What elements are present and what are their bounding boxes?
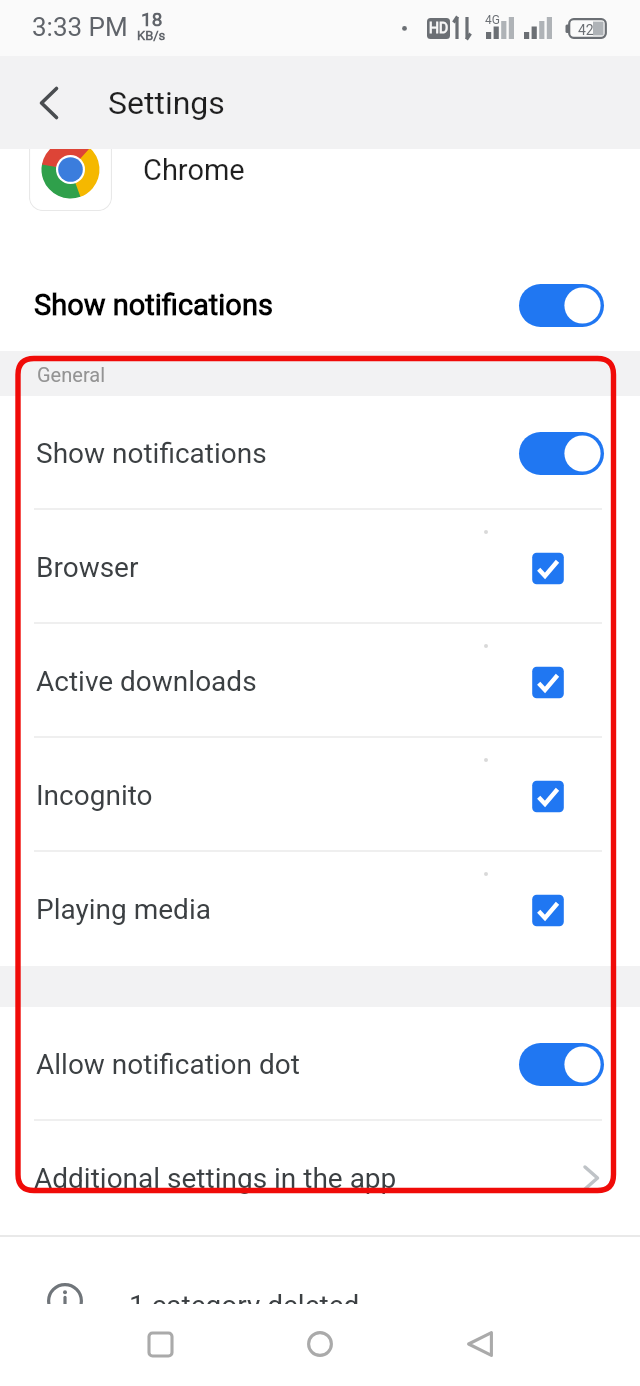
button[interactable]: Show notifications bbox=[0, 396, 640, 510]
staticText: 42 bbox=[578, 22, 594, 38]
staticText: 1 category deleted bbox=[129, 1289, 360, 1322]
staticText: 3:33 PM bbox=[32, 12, 128, 42]
button[interactable]: Additional settings in the app bbox=[0, 1121, 640, 1235]
staticText: Show notifications bbox=[36, 437, 267, 470]
staticText: Settings bbox=[108, 84, 225, 122]
button[interactable]: Info bbox=[0, 1237, 640, 1377]
button[interactable]: Active downloads bbox=[0, 624, 640, 738]
staticText: Browser bbox=[36, 551, 139, 584]
button[interactable]: Incognito bbox=[0, 738, 640, 852]
button[interactable]: Checkbox bbox=[527, 546, 569, 588]
staticText: 18 bbox=[141, 8, 163, 30]
button[interactable]: Toggle setting bbox=[519, 432, 604, 475]
staticText: General bbox=[37, 363, 106, 386]
button[interactable]: Recent apps bbox=[125, 1309, 195, 1379]
button[interactable]: Checkbox bbox=[527, 774, 569, 816]
button[interactable]: Toggle setting bbox=[519, 284, 604, 327]
staticText: Playing media bbox=[36, 893, 211, 926]
button[interactable]: Back bbox=[445, 1309, 515, 1379]
button[interactable]: Show notifications bbox=[0, 253, 640, 357]
staticText: HD bbox=[429, 20, 449, 36]
button[interactable]: Home bbox=[285, 1309, 355, 1379]
staticText: Chrome bbox=[143, 153, 245, 187]
button[interactable]: Checkbox bbox=[527, 888, 569, 930]
button[interactable]: Checkbox bbox=[527, 660, 569, 702]
staticText: Active downloads bbox=[36, 665, 257, 698]
button[interactable]: Browser bbox=[0, 510, 640, 624]
other: Open app settings bbox=[576, 1163, 606, 1193]
button[interactable]: Allow notification dot bbox=[0, 1007, 640, 1121]
button[interactable]: Navigate up bbox=[25, 79, 73, 127]
staticText: Incognito bbox=[36, 779, 153, 812]
staticText: Additional settings in the app bbox=[34, 1162, 397, 1195]
other: Info bbox=[47, 1283, 83, 1319]
staticText: Show notifications bbox=[34, 288, 273, 322]
staticText: Allow notification dot bbox=[36, 1048, 300, 1081]
staticText: 4G bbox=[485, 13, 500, 27]
staticText: KB/s bbox=[137, 28, 166, 43]
button[interactable]: Playing media bbox=[0, 852, 640, 966]
button[interactable]: Toggle setting bbox=[519, 1043, 604, 1086]
